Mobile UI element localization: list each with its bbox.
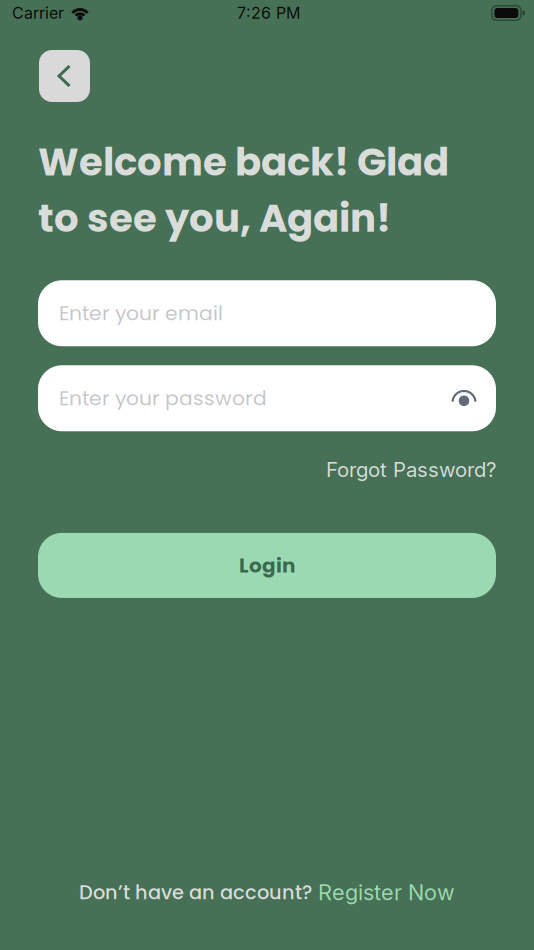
staticText: 7:26 PM [237, 3, 300, 23]
staticText: Enter your email [59, 299, 223, 327]
staticText: Don’t have an account? [79, 879, 312, 906]
button[interactable]: Register Now [318, 879, 455, 906]
staticText: Carrier [12, 3, 64, 23]
staticText: to see you, Again! [38, 191, 391, 245]
staticText: Enter your password [59, 384, 267, 412]
staticText: Register Now [318, 879, 455, 906]
button[interactable]: Login [38, 533, 496, 598]
staticText: Login [239, 551, 295, 579]
staticText: Welcome back! Glad [38, 135, 449, 189]
button[interactable]: Back [39, 50, 90, 102]
button[interactable]: Show password [448, 382, 480, 414]
button[interactable]: Forgot Password? [326, 457, 496, 482]
staticText: Forgot Password? [326, 457, 496, 482]
